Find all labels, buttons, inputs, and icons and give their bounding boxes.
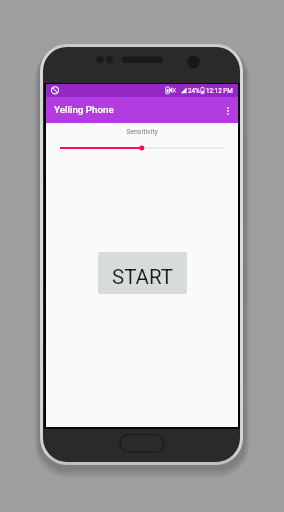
staticText: Sensitivity: [46, 128, 238, 136]
staticText: 12:12 PM: [206, 87, 233, 94]
button[interactable]: [46, 143, 238, 153]
staticText: 24%: [188, 87, 200, 94]
staticText: START: [112, 265, 174, 289]
button[interactable]: More options: [217, 100, 238, 121]
staticText: Yelling Phone: [54, 104, 114, 115]
button[interactable]: START: [98, 252, 187, 294]
